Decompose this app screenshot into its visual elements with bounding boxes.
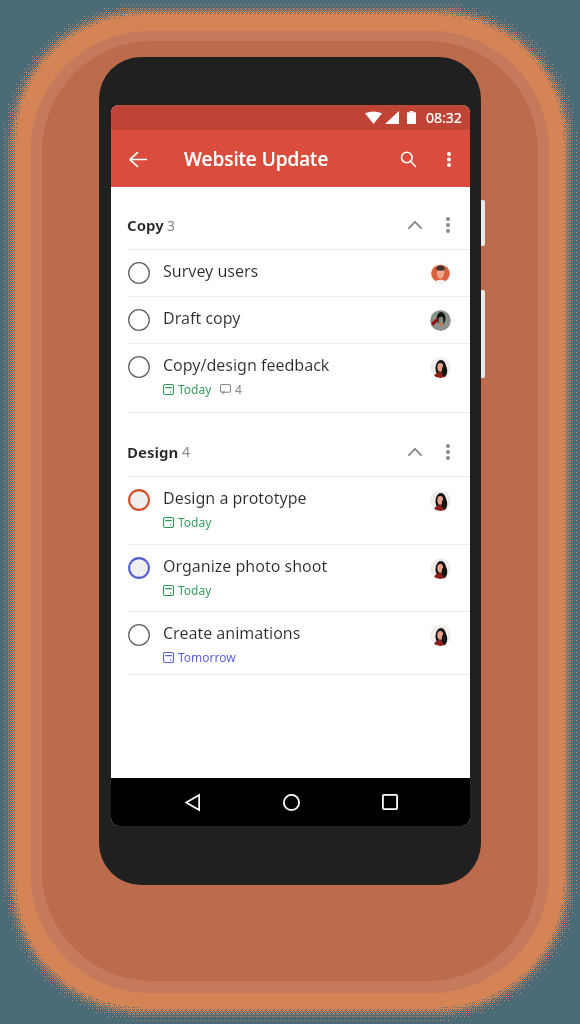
staticText: Design a prototype <box>163 487 307 509</box>
button[interactable]: Search <box>387 134 429 184</box>
button[interactable]: Create animations <box>111 612 470 674</box>
staticText: Today <box>178 381 212 397</box>
staticText: Draft copy <box>163 307 241 329</box>
staticText: 4 <box>182 442 191 461</box>
staticText: 4 <box>235 381 242 397</box>
button[interactable]: Design <box>111 413 470 476</box>
button[interactable]: Organize photo shoot <box>111 545 470 611</box>
button[interactable]: More options <box>429 134 469 184</box>
staticText: Design <box>127 442 179 462</box>
button[interactable]: Section options <box>427 204 469 246</box>
staticText: Today <box>178 582 212 598</box>
button[interactable]: Section options <box>427 431 469 473</box>
staticText: Copy/design feedback <box>163 354 330 376</box>
button[interactable]: Back <box>114 135 162 183</box>
button[interactable]: Back <box>164 778 220 826</box>
staticText: Today <box>178 514 212 530</box>
button[interactable]: Collapse section <box>403 204 427 246</box>
staticText: 3 <box>167 216 176 235</box>
staticText: Tomorrow <box>178 649 236 665</box>
button[interactable]: Recents <box>362 778 418 826</box>
staticText: Survey users <box>163 260 259 282</box>
staticText: Copy <box>127 215 164 235</box>
button[interactable]: Survey users <box>111 250 470 296</box>
staticText: Organize photo shoot <box>163 555 328 577</box>
button[interactable]: Copy/design feedback <box>111 344 470 412</box>
button[interactable]: Home <box>263 778 319 826</box>
button[interactable]: Design a prototype <box>111 477 470 544</box>
staticText: Website Update <box>184 146 329 172</box>
staticText: Create animations <box>163 622 301 644</box>
button[interactable]: Copy <box>111 187 470 249</box>
staticText: 08:32 <box>426 108 462 127</box>
button[interactable]: Draft copy <box>111 297 470 343</box>
button[interactable]: Collapse section <box>403 431 427 473</box>
